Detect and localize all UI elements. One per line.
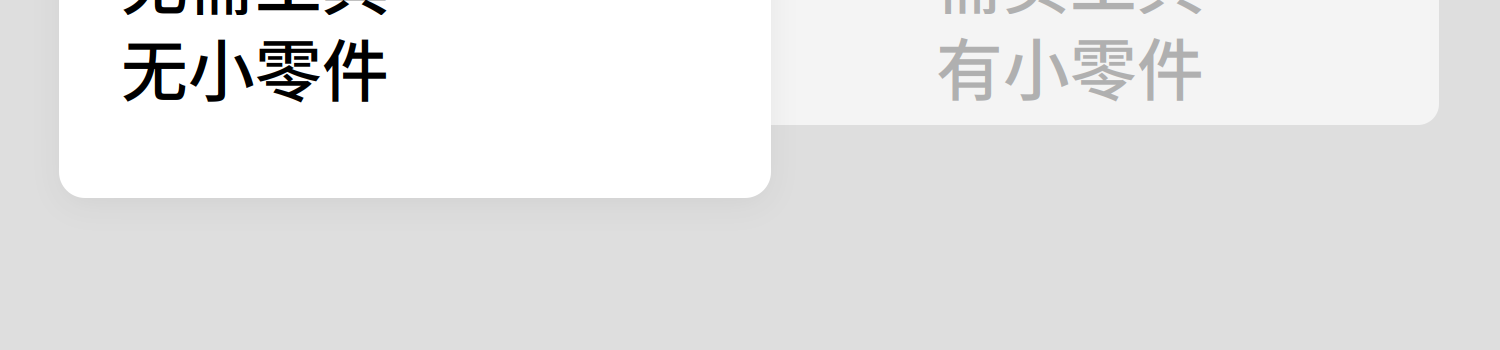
button[interactable]: 需买工具 xyxy=(711,0,1439,125)
staticText: 无需工具 xyxy=(121,0,389,28)
button[interactable]: 无需工具 xyxy=(59,0,771,198)
staticText: 有小零件 xyxy=(936,17,1204,114)
staticText: 需买工具 xyxy=(936,0,1204,27)
staticText: 无小零件 xyxy=(121,18,389,115)
